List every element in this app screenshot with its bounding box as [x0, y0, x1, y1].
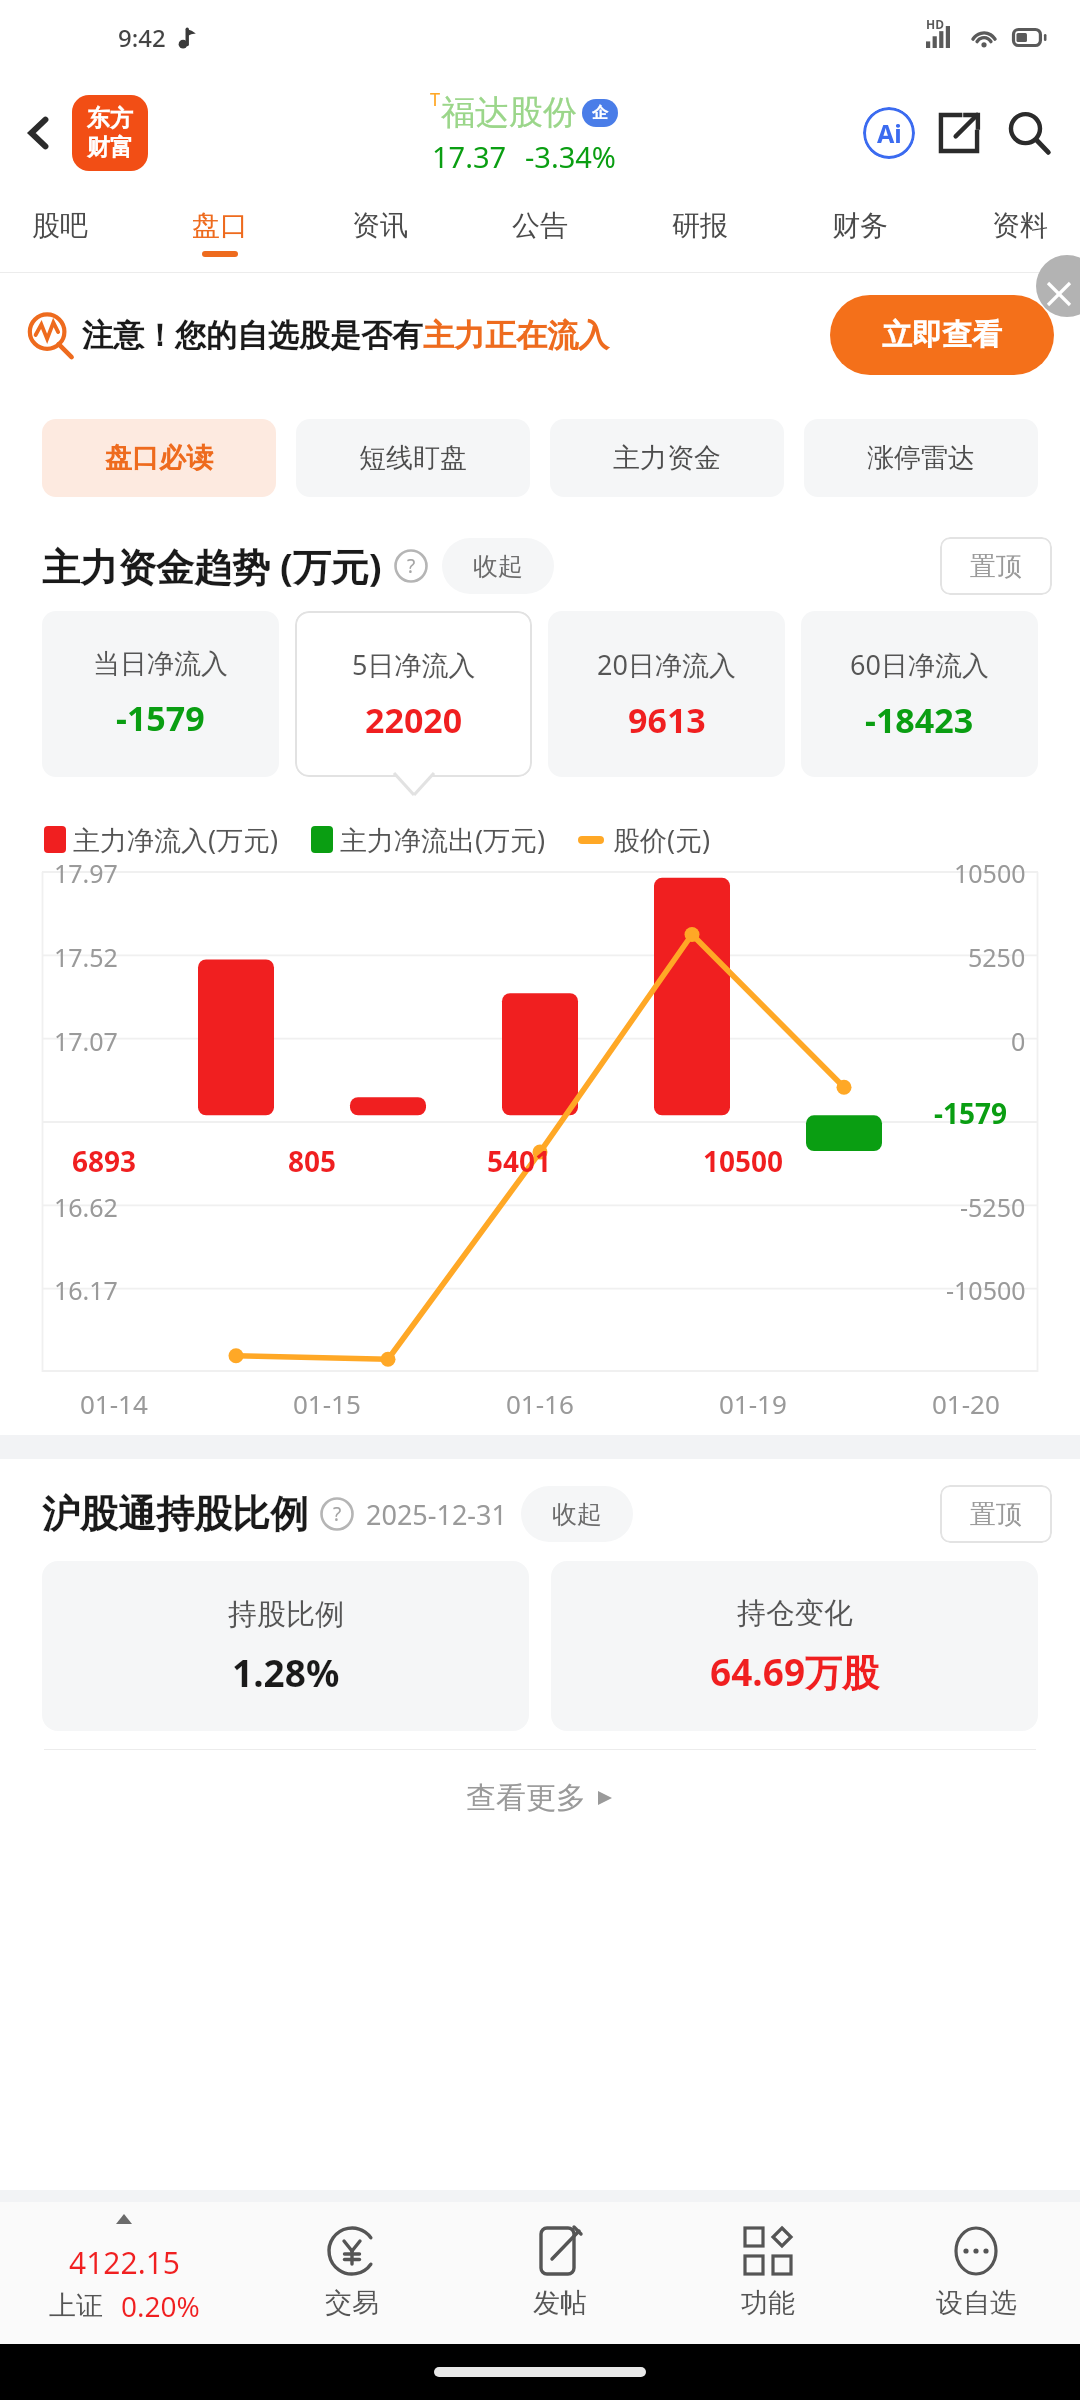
- button[interactable]: 收起: [521, 1486, 633, 1542]
- staticText: 5250: [968, 940, 1026, 974]
- staticText: 10500: [703, 1142, 784, 1180]
- staticText: 沪股通持股比例: [42, 1490, 308, 1538]
- staticText: 5401: [487, 1142, 552, 1180]
- staticText: 盘口: [192, 208, 248, 243]
- staticText: 9613: [628, 697, 706, 743]
- staticText: -1579: [116, 695, 205, 741]
- staticText: 17.37: [432, 137, 507, 176]
- staticText: 持仓变化: [737, 1595, 853, 1632]
- button[interactable]: 交易: [248, 2202, 456, 2344]
- button[interactable]: 盘口: [192, 192, 248, 272]
- staticText: 资料: [992, 208, 1048, 243]
- button[interactable]: 持股比例: [42, 1561, 529, 1731]
- staticText: 主力资金: [613, 441, 721, 475]
- staticText: 发帖: [533, 2286, 587, 2320]
- staticText: 22020: [365, 697, 463, 743]
- staticText: 主力净流出(万元): [340, 821, 546, 858]
- staticText: 20日净流入: [597, 646, 736, 683]
- staticText: -5250: [960, 1190, 1026, 1224]
- staticText: 01-16: [506, 1386, 574, 1421]
- staticText: 福达股份: [441, 91, 577, 134]
- button[interactable]: 资料: [992, 192, 1048, 272]
- staticText: 股吧: [32, 208, 88, 243]
- staticText: -18423: [865, 697, 974, 743]
- button[interactable]: 5日净流入: [295, 611, 532, 777]
- button[interactable]: 公告: [512, 192, 568, 272]
- button[interactable]: 主力资金: [550, 419, 784, 497]
- staticText: 财务: [832, 208, 888, 243]
- staticText: 64.69万股: [710, 1646, 880, 1697]
- staticText: 收起: [552, 1499, 602, 1530]
- button[interactable]: 查看更多: [0, 1750, 1080, 1846]
- button[interactable]: Back: [10, 104, 68, 162]
- staticText: 9:42: [118, 21, 166, 54]
- staticText: 805: [288, 1142, 337, 1180]
- button[interactable]: 置顶: [940, 537, 1052, 595]
- staticText: 财富: [87, 133, 133, 162]
- staticText: 功能: [741, 2286, 795, 2320]
- staticText: -1579: [934, 1094, 1008, 1132]
- staticText: 主力正在流入: [423, 316, 609, 355]
- button[interactable]: 短线盯盘: [296, 419, 530, 497]
- staticText: 2025-12-31: [366, 1496, 507, 1533]
- staticText: 涨停雷达: [867, 441, 975, 475]
- staticText: 10500: [954, 856, 1026, 890]
- button[interactable]: 设自选: [872, 2202, 1080, 2344]
- staticText: 研报: [672, 208, 728, 243]
- staticText: 公告: [512, 208, 568, 243]
- button[interactable]: 股吧: [32, 192, 88, 272]
- button[interactable]: 东方财富: [72, 95, 148, 171]
- staticText: 17.97: [54, 856, 118, 890]
- staticText: 17.07: [54, 1024, 118, 1058]
- button[interactable]: 当日净流入: [42, 611, 279, 777]
- staticText: 查看更多: [466, 1779, 586, 1817]
- staticText: 盘口必读: [105, 441, 213, 475]
- staticText: -3.34%: [525, 137, 616, 176]
- staticText: 01-19: [719, 1386, 787, 1421]
- staticText: Ai: [877, 116, 902, 150]
- staticText: 立即查看: [882, 316, 1002, 354]
- button[interactable]: Search: [994, 98, 1064, 168]
- button[interactable]: 发帖: [456, 2202, 664, 2344]
- staticText: ?: [407, 553, 416, 579]
- button[interactable]: 功能: [664, 2202, 872, 2344]
- staticText: 主力资金趋势 (万元): [42, 540, 382, 592]
- button[interactable]: 研报: [672, 192, 728, 272]
- button[interactable]: 盘口必读: [42, 419, 276, 497]
- staticText: 4122.15: [69, 2242, 180, 2283]
- staticText: T: [430, 87, 441, 112]
- button[interactable]: 资讯: [352, 192, 408, 272]
- staticText: 交易: [325, 2286, 379, 2320]
- button[interactable]: 60日净流入: [801, 611, 1038, 777]
- staticText: 1.28%: [232, 1647, 340, 1697]
- staticText: 16.17: [54, 1273, 118, 1307]
- button[interactable]: 持仓变化: [551, 1561, 1038, 1731]
- staticText: 企: [592, 103, 608, 123]
- staticText: 0.20%: [121, 2287, 200, 2325]
- staticText: 60日净流入: [850, 646, 989, 683]
- button[interactable]: AI: [854, 98, 924, 168]
- staticText: 上证: [49, 2289, 103, 2323]
- staticText: 设自选: [936, 2286, 1017, 2320]
- staticText: 东方: [87, 104, 133, 133]
- staticText: 5日净流入: [352, 646, 476, 683]
- staticText: 主力净流入(万元): [73, 821, 279, 858]
- button[interactable]: 财务: [832, 192, 888, 272]
- staticText: 当日净流入: [93, 647, 228, 681]
- staticText: 16.62: [54, 1190, 118, 1224]
- button[interactable]: 4122.15: [0, 2202, 248, 2344]
- button[interactable]: Close: [1036, 255, 1080, 317]
- staticText: 0: [1011, 1024, 1026, 1058]
- staticText: 01-14: [80, 1386, 148, 1421]
- button[interactable]: 20日净流入: [548, 611, 785, 777]
- staticText: 01-20: [932, 1386, 1000, 1421]
- button[interactable]: 立即查看: [830, 295, 1054, 375]
- button[interactable]: 涨停雷达: [804, 419, 1038, 497]
- staticText: ?: [333, 1501, 342, 1527]
- button[interactable]: 收起: [442, 538, 554, 594]
- staticText: 6893: [72, 1142, 137, 1180]
- button[interactable]: Share: [924, 98, 994, 168]
- button[interactable]: 置顶: [940, 1485, 1052, 1543]
- staticText: 持股比例: [228, 1596, 344, 1633]
- staticText: 短线盯盘: [359, 441, 467, 475]
